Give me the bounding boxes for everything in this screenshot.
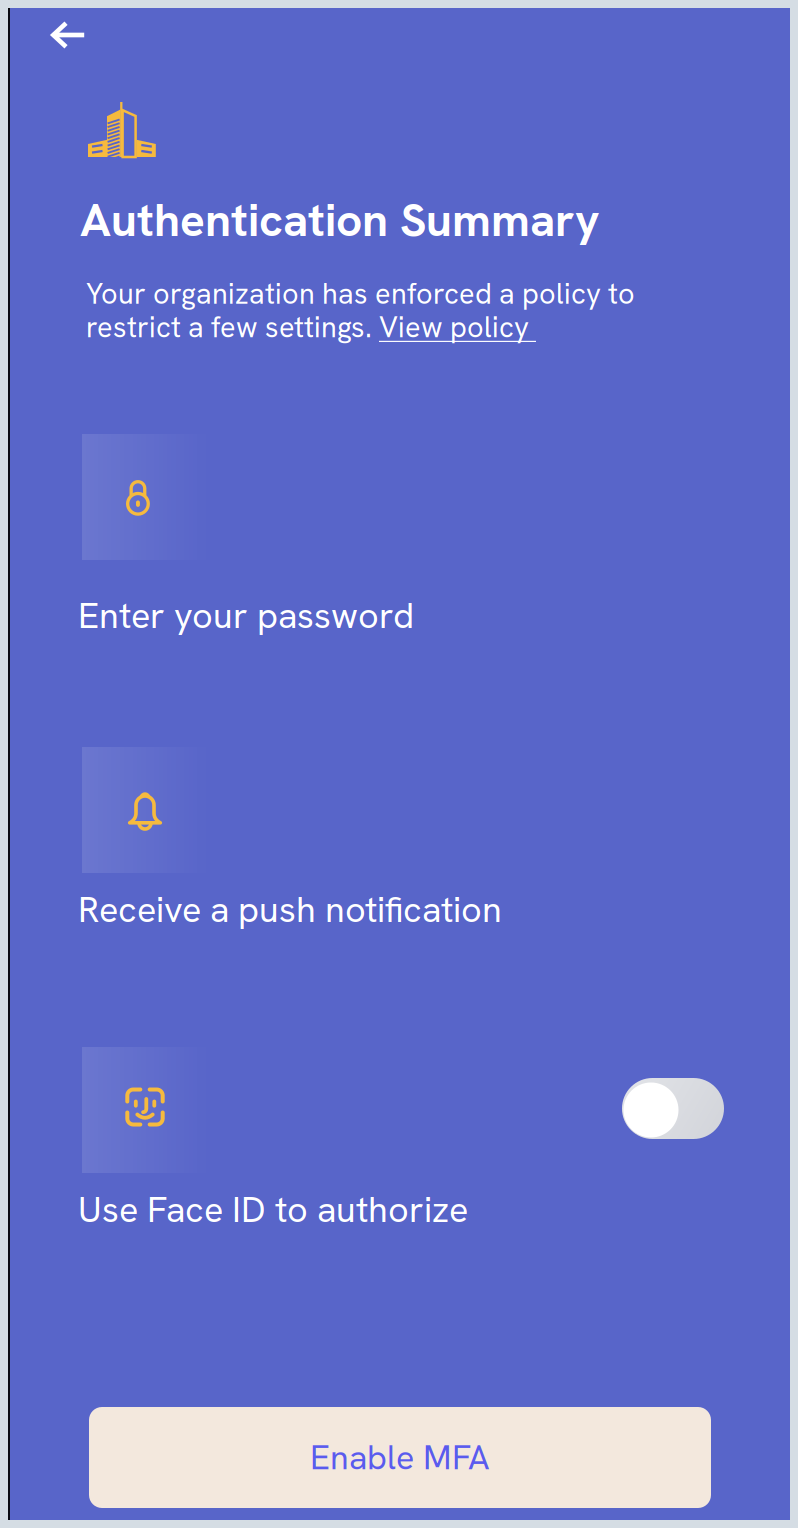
staticText: restrict a few settings. View policy: [86, 309, 536, 346]
button[interactable]: Back: [42, 14, 95, 56]
staticText: Enter your password: [78, 592, 414, 639]
button[interactable]: Use Face ID to authorize: [622, 1078, 724, 1139]
staticText: Use Face ID to authorize: [78, 1186, 468, 1233]
staticText: Enable MFA: [310, 1435, 490, 1480]
staticText: Your organization has enforced a policy …: [86, 275, 635, 312]
staticText: Authentication Summary: [80, 190, 600, 250]
staticText: Receive a push notification: [78, 886, 502, 933]
button[interactable]: Enable MFA: [89, 1407, 711, 1508]
